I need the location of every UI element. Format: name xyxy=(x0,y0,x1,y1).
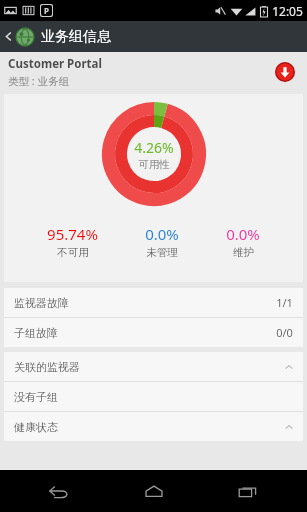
staticText: Customer Portal xyxy=(8,56,102,72)
staticText: 未管理 xyxy=(146,246,178,259)
staticText: 关联的监视器 xyxy=(14,360,80,374)
staticText: 95.74% xyxy=(47,224,98,244)
staticText: 没有子组 xyxy=(14,390,58,404)
button[interactable]: Back xyxy=(24,470,94,512)
button[interactable]: 0.0% xyxy=(222,224,264,259)
staticText: 监视器故障 xyxy=(14,296,69,310)
button[interactable]: 0.0% xyxy=(141,224,183,259)
staticText: 1/1 xyxy=(276,295,293,310)
button[interactable]: Download xyxy=(273,60,297,84)
button[interactable]: 95.74% xyxy=(43,224,102,259)
staticText: 0/0 xyxy=(276,325,293,340)
staticText: 维护 xyxy=(233,246,254,259)
staticText: 健康状态 xyxy=(14,420,58,434)
button[interactable]: 子组故障 xyxy=(4,318,303,347)
staticText: 子组故障 xyxy=(14,326,58,340)
staticText: P xyxy=(44,5,49,16)
button[interactable]: Home xyxy=(119,470,189,512)
button[interactable]: 没有子组 xyxy=(4,382,303,411)
button[interactable]: Back xyxy=(0,21,16,52)
staticText: 0.0% xyxy=(145,224,179,244)
staticText: 业务组信息 xyxy=(41,28,111,46)
staticText: 不可用 xyxy=(57,246,89,259)
staticText: 0.0% xyxy=(226,224,260,244)
button[interactable]: 监视器故障 xyxy=(4,288,303,317)
button[interactable]: 健康状态 xyxy=(4,412,303,441)
staticText: 类型 : 业务组 xyxy=(8,74,69,88)
staticText: 12:05 xyxy=(272,3,303,19)
staticText: 可用性 xyxy=(138,158,170,171)
staticText: 4.26% xyxy=(134,138,174,157)
button[interactable]: 关联的监视器 xyxy=(4,352,303,381)
button[interactable]: Recent apps xyxy=(213,470,283,512)
